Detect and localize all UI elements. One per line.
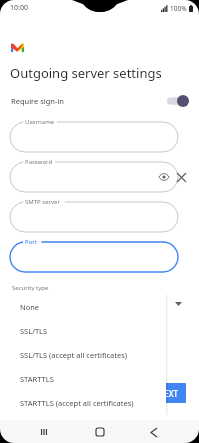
staticText: SMTP server bbox=[25, 198, 60, 206]
button[interactable]: SSL/TLS (accept all certificates) bbox=[8, 343, 166, 367]
staticText: Username bbox=[25, 118, 55, 126]
button[interactable]: Clear password bbox=[172, 168, 190, 186]
button[interactable]: NEXT bbox=[150, 383, 186, 403]
staticText: Port bbox=[25, 238, 37, 246]
button[interactable]: Require sign-in bbox=[0, 90, 199, 112]
button[interactable]: Require sign-in toggle bbox=[167, 95, 189, 107]
staticText: Require sign-in bbox=[11, 96, 64, 106]
staticText: None bbox=[20, 302, 40, 312]
staticText: STARTTLS bbox=[20, 374, 54, 384]
staticText: STARTTLS (accept all certificates) bbox=[20, 398, 134, 408]
staticText: Security type bbox=[12, 284, 49, 292]
button[interactable]: Password bbox=[10, 162, 178, 192]
button[interactable]: Open security type dropdown bbox=[170, 295, 186, 311]
button[interactable]: Home bbox=[90, 422, 110, 442]
button[interactable]: None bbox=[8, 295, 166, 319]
staticText: 10:00 bbox=[10, 3, 28, 13]
staticText: SSL/TLS bbox=[20, 326, 48, 336]
button[interactable]: Back bbox=[144, 422, 164, 442]
staticText: 100% bbox=[170, 4, 187, 13]
button[interactable]: Username bbox=[10, 122, 178, 152]
button[interactable]: STARTTLS bbox=[8, 367, 166, 391]
staticText: NEXT bbox=[158, 388, 179, 399]
button[interactable]: STARTTLS (accept all certificates) bbox=[8, 391, 166, 415]
button[interactable]: Recent apps bbox=[35, 422, 55, 442]
button[interactable]: Show password bbox=[158, 171, 170, 183]
button[interactable]: Port bbox=[10, 242, 178, 272]
staticText: Outgoing server settings bbox=[10, 64, 162, 82]
staticText: SSL/TLS (accept all certificates) bbox=[20, 350, 127, 360]
button[interactable]: SSL/TLS bbox=[8, 319, 166, 343]
button[interactable]: SMTP server bbox=[10, 202, 178, 232]
staticText: Password bbox=[25, 158, 53, 166]
